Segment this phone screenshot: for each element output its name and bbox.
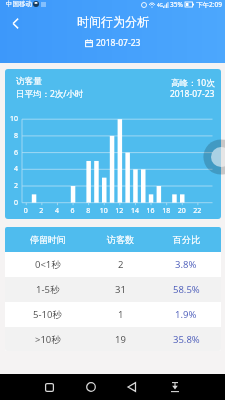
- staticText: 1-5秒: [36, 283, 60, 296]
- staticText: 访客量: [16, 76, 42, 87]
- staticText: 3.8%: [175, 258, 197, 271]
- staticText: 0<1秒: [35, 258, 61, 271]
- staticText: 访客数: [107, 234, 134, 245]
- staticText: 58.5%: [173, 283, 200, 296]
- button[interactable]: Back: [5, 13, 26, 34]
- staticText: 百分比: [173, 234, 200, 245]
- staticText: 19: [115, 333, 126, 346]
- button[interactable]: >10秒: [5, 327, 221, 351]
- staticText: 中国移动: [6, 0, 32, 8]
- button[interactable]: Hide keyboard: [162, 374, 188, 400]
- button[interactable]: 5-10秒: [5, 302, 221, 327]
- staticText: 时间行为分析: [77, 14, 149, 29]
- staticText: 35%: [170, 0, 183, 9]
- button[interactable]: 1-5秒: [5, 277, 221, 302]
- staticText: 5-10秒: [33, 308, 62, 321]
- staticText: 日平均：2次/小时: [16, 88, 84, 100]
- staticText: 2: [118, 258, 124, 271]
- staticText: >10秒: [35, 333, 61, 346]
- button[interactable]: 0<1秒: [5, 252, 221, 277]
- staticText: 停留时间: [30, 234, 66, 245]
- staticText: 2018-07-23: [170, 88, 215, 100]
- staticText: 1.9%: [175, 308, 197, 321]
- button[interactable]: Home: [78, 374, 104, 400]
- staticText: 2018-07-23: [96, 37, 141, 49]
- staticText: 高峰：10次: [171, 77, 215, 89]
- button[interactable]: Recents: [36, 374, 62, 400]
- button[interactable]: 2018-07-23: [0, 37, 225, 49]
- staticText: 4G: [157, 2, 163, 8]
- staticText: 31: [115, 283, 126, 296]
- staticText: 1: [118, 308, 124, 321]
- button[interactable]: Back: [119, 374, 145, 400]
- staticText: 35.8%: [173, 333, 200, 346]
- staticText: 下午2:09: [196, 0, 222, 9]
